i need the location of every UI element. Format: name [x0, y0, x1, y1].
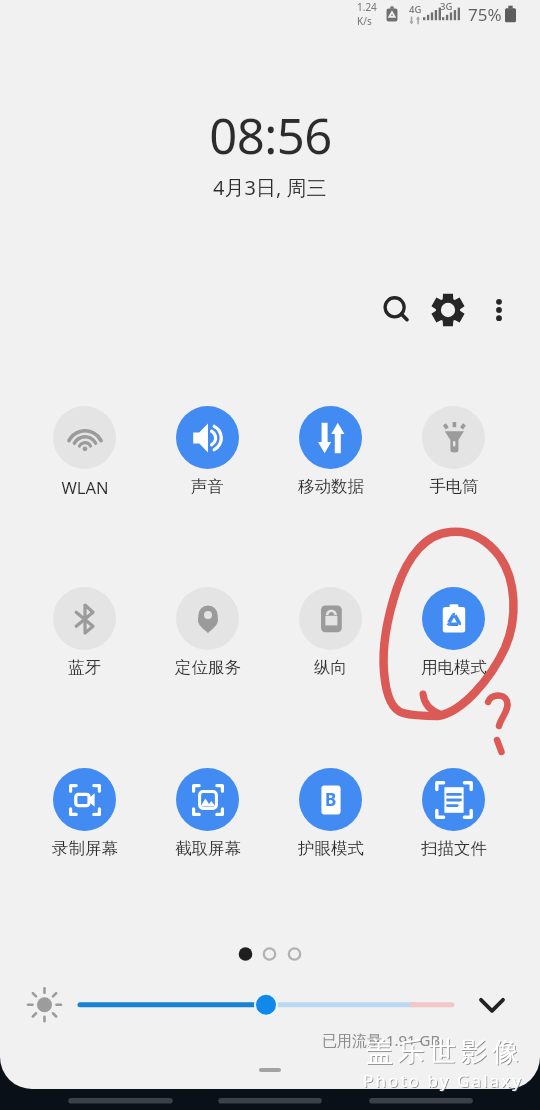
staticText: 盖乐世影像 — [367, 1036, 525, 1070]
button[interactable]: More options — [473, 284, 524, 335]
staticText: K/s — [357, 14, 372, 28]
button[interactable]: 用电模式 — [392, 587, 515, 767]
button[interactable]: 截取屏幕 — [146, 768, 269, 948]
staticText: 75% — [468, 3, 502, 26]
staticText: 盖乐世影像 — [366, 1035, 524, 1069]
staticText: 已用流量 1.91 GB — [322, 1030, 441, 1050]
button[interactable]: WLAN — [23, 406, 146, 586]
button[interactable]: 扫描文件 — [392, 768, 515, 948]
button[interactable]: Collapse panel — [259, 1068, 281, 1072]
staticText: 蓝牙 — [68, 657, 101, 678]
staticText: 声音 — [191, 476, 224, 497]
staticText: 3G — [440, 0, 453, 13]
button[interactable]: B — [269, 768, 392, 948]
staticText: 1.24 — [357, 0, 377, 14]
staticText: B — [325, 788, 337, 811]
staticText: 4G — [409, 3, 422, 16]
button[interactable]: Settings — [422, 284, 473, 335]
staticText: 08:56 — [209, 102, 332, 169]
staticText: 扫描文件 — [421, 838, 487, 859]
staticText: 截取屏幕 — [175, 838, 241, 859]
button[interactable]: 纵向 — [269, 587, 392, 767]
button[interactable]: 蓝牙 — [23, 587, 146, 767]
staticText: 定位服务 — [175, 657, 241, 678]
button[interactable]: 移动数据 — [269, 406, 392, 586]
staticText: 用电模式 — [421, 657, 487, 678]
button[interactable]: 声音 — [146, 406, 269, 586]
staticText: 护眼模式 — [298, 838, 364, 859]
staticText: Photo by Galaxy — [363, 1069, 524, 1092]
staticText: 纵向 — [314, 657, 347, 678]
staticText: 手电筒 — [429, 476, 479, 497]
button[interactable]: Search — [371, 284, 422, 335]
staticText: 移动数据 — [298, 476, 364, 497]
staticText: 4月3日, 周三 — [213, 174, 327, 201]
staticText: WLAN — [61, 476, 109, 498]
staticText: Photo by Galaxy — [364, 1070, 525, 1093]
button[interactable]: 手电筒 — [392, 406, 515, 586]
button[interactable]: 录制屏幕 — [23, 768, 146, 948]
button[interactable]: 定位服务 — [146, 587, 269, 767]
staticText: 录制屏幕 — [52, 838, 118, 859]
